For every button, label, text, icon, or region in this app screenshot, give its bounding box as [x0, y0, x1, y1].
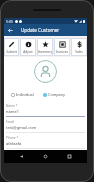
- staticText: Inventory: [37, 50, 53, 54]
- staticText: Sales: [71, 50, 87, 54]
- button[interactable]: Submit: [4, 38, 19, 56]
- staticText: Name *: [6, 104, 18, 108]
- staticText: Adjust: [20, 50, 36, 54]
- staticText: test@gmail.com: [6, 125, 37, 130]
- staticText: Submit: [4, 50, 19, 54]
- staticText: Invoices: [54, 50, 70, 54]
- button[interactable]: Inventory: [37, 38, 53, 56]
- button[interactable]: Recent apps: [65, 152, 74, 161]
- button[interactable]: Back: [17, 152, 26, 161]
- staticText: name1: [6, 109, 19, 114]
- button[interactable]: Adjust: [20, 38, 36, 56]
- button[interactable]: Navigate back: [6, 26, 15, 35]
- button[interactable]: Home: [41, 152, 50, 161]
- button[interactable]: Invoices: [54, 38, 70, 56]
- staticText: Individual: [16, 92, 34, 97]
- staticText: afafaafa: [6, 141, 22, 146]
- staticText: Phone *: [6, 136, 19, 140]
- staticText: 5:05: [6, 19, 14, 24]
- button[interactable]: Individual: [11, 91, 34, 98]
- button[interactable]: Sales: [71, 38, 87, 56]
- staticText: Email: [6, 120, 15, 124]
- staticText: Update Customer: [21, 27, 60, 33]
- staticText: Company: [48, 92, 65, 97]
- button[interactable]: Company: [43, 91, 65, 98]
- button[interactable]: Customer photo: [34, 60, 57, 83]
